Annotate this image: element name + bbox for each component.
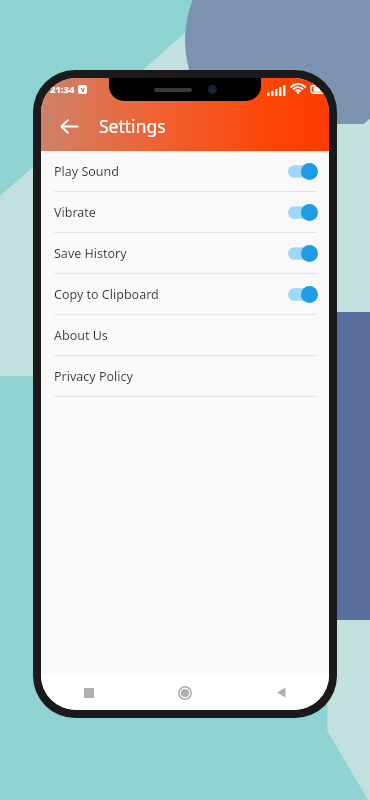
staticText: Privacy Policy bbox=[54, 368, 133, 385]
button[interactable]: Toggle bbox=[288, 286, 318, 303]
button[interactable]: About Us bbox=[41, 315, 329, 355]
button[interactable]: Toggle bbox=[288, 163, 318, 180]
button[interactable]: Save History bbox=[41, 233, 329, 273]
button[interactable]: Vibrate bbox=[41, 192, 329, 232]
button[interactable]: Recents bbox=[41, 675, 137, 710]
button[interactable]: Privacy Policy bbox=[41, 356, 329, 396]
staticText: About Us bbox=[54, 327, 108, 344]
staticText: Settings bbox=[99, 114, 166, 138]
button[interactable]: Play Sound bbox=[41, 151, 329, 191]
button[interactable]: Back bbox=[52, 109, 86, 143]
button[interactable]: Copy to Clipboard bbox=[41, 274, 329, 314]
staticText: 21:34 bbox=[50, 83, 75, 96]
staticText: Save History bbox=[54, 245, 127, 262]
button[interactable]: Toggle bbox=[288, 245, 318, 262]
staticText: Play Sound bbox=[54, 163, 119, 180]
staticText: v bbox=[81, 85, 85, 94]
button[interactable]: Back bbox=[233, 675, 329, 710]
staticText: Copy to Clipboard bbox=[54, 286, 159, 303]
button[interactable]: Home bbox=[137, 675, 233, 710]
button[interactable]: Toggle bbox=[288, 204, 318, 221]
staticText: Vibrate bbox=[54, 204, 96, 221]
